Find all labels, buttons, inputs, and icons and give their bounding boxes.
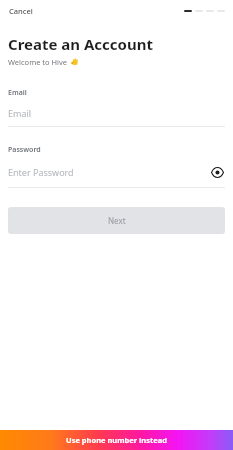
staticText: Welcome to Hive — [8, 57, 68, 67]
button[interactable]: Password — [0, 145, 233, 188]
staticText: Create an Acccount — [8, 34, 153, 54]
staticText: Email — [8, 88, 27, 98]
staticText: Email — [8, 107, 32, 119]
staticText: Password — [8, 145, 41, 155]
staticText: Next — [108, 215, 126, 226]
staticText: Use phone number instead — [66, 435, 167, 445]
button[interactable]: Cancel — [8, 4, 34, 18]
button[interactable]: Use phone number instead — [0, 430, 233, 450]
button[interactable]: Email — [0, 88, 233, 127]
button[interactable]: Show password — [209, 164, 225, 180]
button[interactable]: Next — [8, 207, 225, 234]
staticText: Cancel — [9, 6, 33, 16]
staticText: Enter Password — [8, 166, 74, 178]
